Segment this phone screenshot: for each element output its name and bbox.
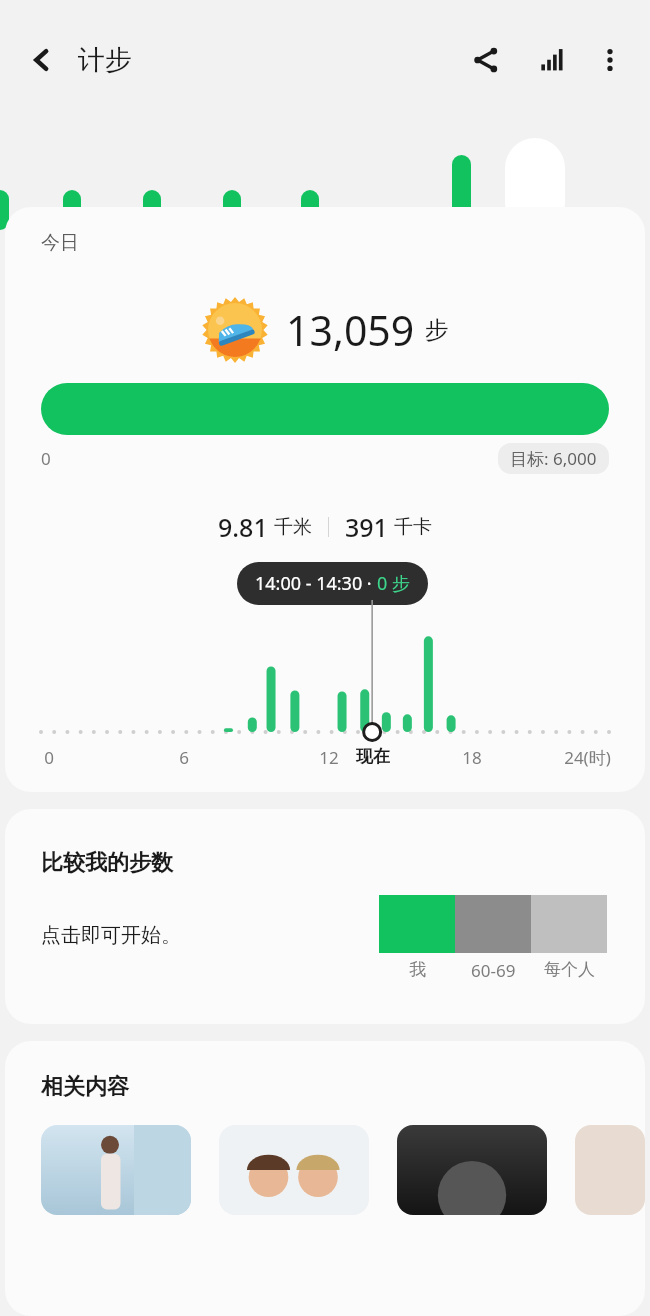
button[interactable]: Back xyxy=(18,36,66,84)
staticText: 0 步 xyxy=(377,571,410,596)
button[interactable]: Share xyxy=(462,36,510,84)
staticText: 18 xyxy=(462,746,482,769)
staticText: 计步 xyxy=(78,43,132,77)
staticText: 13,059 xyxy=(286,302,415,358)
button[interactable]: 今日 xyxy=(5,207,645,792)
button[interactable] xyxy=(575,1125,645,1215)
button[interactable] xyxy=(41,1125,191,1215)
staticText: 比较我的步数 xyxy=(41,849,173,877)
staticText: 24(时) xyxy=(564,746,611,769)
staticText: 60-69 xyxy=(471,959,516,982)
staticText: 步 xyxy=(425,315,449,345)
staticText: 今日 xyxy=(41,231,79,255)
staticText: 12 xyxy=(319,746,339,769)
staticText: 千卡 xyxy=(394,515,432,539)
staticText: 点击即可开始。 xyxy=(41,923,181,948)
staticText: 现在 xyxy=(356,746,390,767)
button[interactable]: Statistics xyxy=(528,36,576,84)
staticText: 0 xyxy=(44,746,54,769)
staticText: 9.81 xyxy=(218,510,268,544)
staticText: 相关内容 xyxy=(41,1073,129,1101)
staticText: 14:00 - 14:30 · xyxy=(255,571,377,596)
button[interactable] xyxy=(397,1125,547,1215)
staticText: 6 xyxy=(179,746,189,769)
staticText: 每个人 xyxy=(544,959,595,980)
staticText: 0 xyxy=(41,447,51,470)
button[interactable]: 相关内容 xyxy=(5,1041,645,1316)
staticText: 391 xyxy=(345,510,388,544)
button[interactable] xyxy=(219,1125,369,1215)
staticText: 千米 xyxy=(274,515,312,539)
button[interactable]: More options xyxy=(588,38,632,82)
staticText: 目标: 6,000 xyxy=(510,447,597,470)
staticText: 我 xyxy=(409,959,426,980)
button[interactable]: 比较我的步数 xyxy=(5,809,645,1024)
